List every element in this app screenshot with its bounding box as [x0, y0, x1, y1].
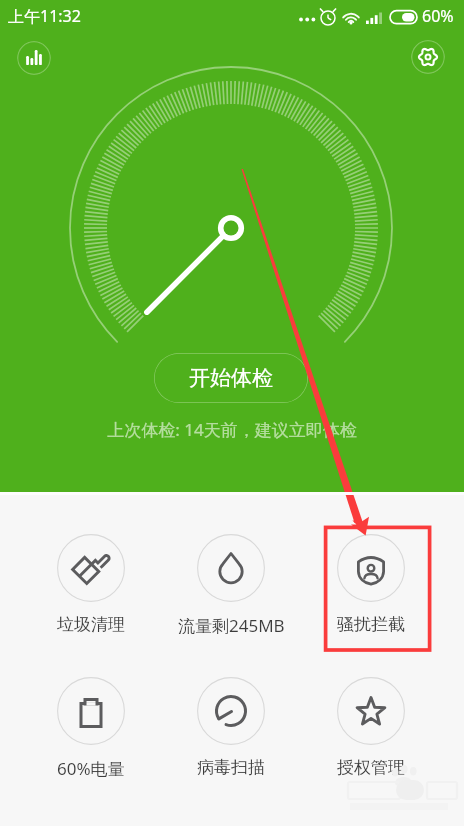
button[interactable]: 授权管理 — [301, 677, 441, 777]
staticText: 垃圾清理 — [57, 614, 125, 634]
button[interactable]: 开始体检 — [154, 353, 308, 403]
staticText: 授权管理 — [337, 757, 405, 777]
button[interactable]: 骚扰拦截 — [301, 534, 441, 634]
staticText: 上午11:32 — [8, 5, 81, 27]
staticText: 流量剩245MB — [178, 614, 285, 634]
staticText: 病毒扫描 — [197, 757, 265, 777]
button[interactable]: Settings — [411, 40, 445, 74]
button[interactable]: 流量剩245MB — [161, 534, 301, 634]
staticText: 骚扰拦截 — [337, 614, 405, 634]
staticText: 60% — [422, 5, 454, 27]
button[interactable]: 60%电量 — [21, 677, 161, 777]
button[interactable]: Statistics — [17, 41, 51, 75]
staticText: 60%电量 — [57, 757, 125, 777]
button[interactable]: 病毒扫描 — [161, 677, 301, 777]
button[interactable]: 垃圾清理 — [21, 534, 161, 634]
staticText: 上次体检: 14天前，建议立即体检 — [107, 418, 357, 441]
staticText: 开始体检 — [189, 365, 273, 391]
